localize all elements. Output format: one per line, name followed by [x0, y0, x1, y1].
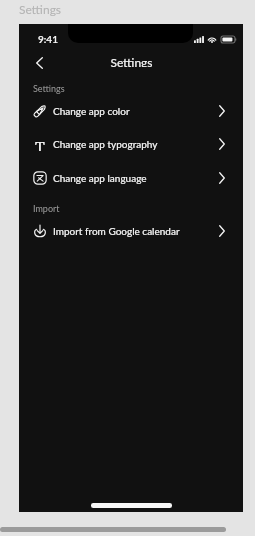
button[interactable]: Back	[28, 52, 50, 74]
staticText: Import	[33, 203, 60, 214]
staticText: Settings	[33, 83, 65, 94]
button[interactable]: Change app color	[19, 95, 243, 127]
staticText: Import from Google calendar	[53, 225, 180, 237]
staticText: 9:41	[38, 33, 58, 43]
staticText: T	[35, 137, 45, 151]
staticText: Change app color	[53, 105, 130, 117]
button[interactable]: Change app language	[19, 162, 243, 194]
button[interactable]: T	[19, 128, 243, 160]
staticText: Settings	[110, 55, 153, 67]
staticText: Change app typography	[53, 138, 158, 150]
button[interactable]: Import from Google calendar	[19, 215, 243, 247]
staticText: Settings	[19, 2, 62, 16]
staticText: Change app language	[53, 172, 147, 184]
